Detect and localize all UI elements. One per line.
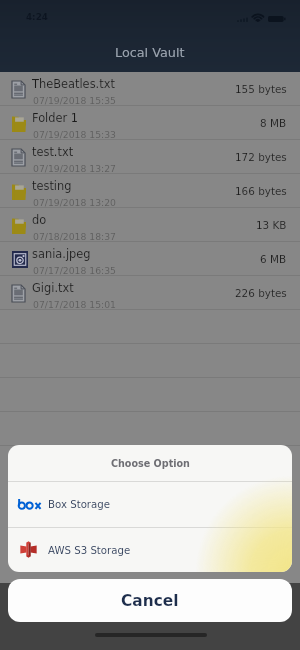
button[interactable]: Box Storage <box>8 481 292 527</box>
staticText: Folder 1 <box>32 111 79 124</box>
staticText: TheBeatles.txt <box>32 77 115 90</box>
staticText: 07/19/2018 15:35 <box>33 95 116 106</box>
staticText: 07/19/2018 15:33 <box>33 129 116 140</box>
button[interactable]: test.txt <box>0 140 300 174</box>
staticText: sania.jpeg <box>32 247 91 260</box>
staticText: 07/19/2018 13:27 <box>33 163 116 174</box>
staticText: 8 MB <box>260 117 287 129</box>
staticText: 166 bytes <box>235 185 287 197</box>
staticText: 07/17/2018 16:35 <box>33 265 116 276</box>
staticText: 226 bytes <box>235 287 287 299</box>
other: Status <box>237 8 286 22</box>
staticText: 07/17/2018 15:01 <box>33 299 116 310</box>
staticText: Local Vault <box>115 45 185 60</box>
button[interactable]: Folder 1 <box>0 106 300 140</box>
button[interactable]: sania.jpeg <box>0 242 300 276</box>
staticText: Box Storage <box>48 499 111 511</box>
staticText: testing <box>32 179 72 192</box>
button[interactable]: TheBeatles.txt <box>0 72 300 106</box>
staticText: Gigi.txt <box>32 281 74 294</box>
staticText: 4:24 <box>26 12 48 22</box>
button[interactable]: testing <box>0 174 300 208</box>
button[interactable]: AWS S3 Storage <box>8 527 292 572</box>
staticText: do <box>32 213 47 226</box>
staticText: 07/19/2018 13:20 <box>33 197 116 208</box>
staticText: Cancel <box>121 592 179 610</box>
button[interactable]: Cancel <box>8 579 292 622</box>
staticText: 155 bytes <box>235 83 287 95</box>
staticText: 07/18/2018 18:37 <box>33 231 116 242</box>
staticText: 172 bytes <box>235 151 287 163</box>
staticText: test.txt <box>32 145 74 158</box>
staticText: Choose Option <box>111 458 190 469</box>
staticText: 13 KB <box>256 219 287 231</box>
staticText: AWS S3 Storage <box>48 545 131 557</box>
button[interactable]: Gigi.txt <box>0 276 300 310</box>
button[interactable]: do <box>0 208 300 242</box>
staticText: 6 MB <box>260 253 287 265</box>
